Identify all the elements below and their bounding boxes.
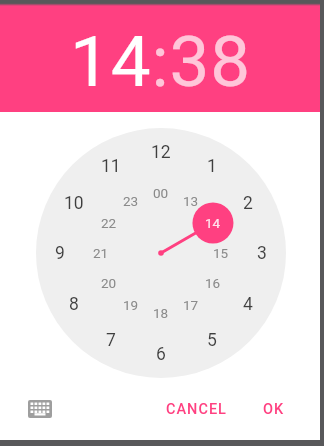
- button[interactable]: 6: [141, 343, 181, 365]
- staticText: OK: [263, 401, 285, 418]
- button[interactable]: 11: [91, 155, 131, 177]
- button[interactable]: 22: [89, 212, 129, 234]
- button[interactable]: [20, 393, 60, 425]
- button[interactable]: 9: [40, 242, 80, 264]
- button[interactable]: 10: [54, 192, 94, 214]
- button[interactable]: 20: [89, 272, 129, 294]
- staticText: 15: [213, 245, 229, 261]
- staticText: 12: [151, 142, 171, 163]
- button[interactable]: 18: [141, 302, 181, 324]
- button[interactable]: 21: [81, 242, 121, 264]
- button[interactable]: 14: [193, 212, 233, 234]
- button[interactable]: 13: [171, 190, 211, 212]
- staticText: 10: [64, 193, 84, 214]
- staticText: 9: [55, 243, 65, 264]
- staticText: 4: [243, 294, 253, 315]
- button[interactable]: OK: [248, 391, 300, 427]
- staticText: 22: [101, 215, 117, 231]
- staticText: 19: [123, 297, 139, 313]
- staticText: 7: [106, 330, 116, 351]
- staticText: 1: [207, 156, 217, 177]
- staticText: 3: [257, 243, 267, 264]
- staticText: 6: [156, 344, 166, 365]
- button[interactable]: CANCEL: [160, 391, 232, 427]
- staticText: 17: [183, 297, 199, 313]
- staticText: 20: [101, 275, 117, 291]
- button[interactable]: 8: [54, 293, 94, 315]
- staticText: 16: [205, 275, 221, 291]
- button[interactable]: 17: [171, 294, 211, 316]
- staticText: 18: [153, 305, 169, 321]
- button[interactable]: 4: [228, 293, 268, 315]
- button[interactable]: 3: [242, 242, 282, 264]
- button[interactable]: 2: [228, 192, 268, 214]
- staticText: 8: [69, 294, 79, 315]
- staticText: 13: [183, 193, 199, 209]
- staticText: 5: [207, 330, 217, 351]
- button[interactable]: 16: [193, 272, 233, 294]
- button[interactable]: 5: [192, 329, 232, 351]
- button[interactable]: 1: [192, 155, 232, 177]
- staticText: 21: [93, 245, 109, 261]
- staticText: CANCEL: [166, 401, 227, 418]
- staticText: 2: [243, 193, 253, 214]
- button[interactable]: 7: [91, 329, 131, 351]
- staticText: 14:38: [70, 20, 251, 103]
- staticText: 14: [205, 215, 221, 231]
- staticText: 00: [153, 185, 169, 201]
- staticText: 11: [101, 156, 121, 177]
- button[interactable]: 19: [111, 294, 151, 316]
- button[interactable]: 15: [201, 242, 241, 264]
- staticText: 23: [123, 193, 139, 209]
- button[interactable]: 23: [111, 190, 151, 212]
- button[interactable]: 00: [141, 182, 181, 204]
- button[interactable]: 12: [141, 141, 181, 163]
